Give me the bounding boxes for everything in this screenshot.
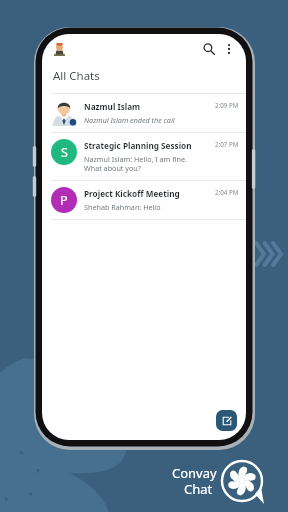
staticText: Strategic Planning Session [84, 140, 192, 151]
staticText: P [60, 192, 68, 209]
staticText: Convay [172, 464, 217, 482]
staticText: 2:04 PM [215, 188, 239, 196]
staticText: Shehab Rahman: Hello [84, 202, 161, 212]
button[interactable]: S [42, 133, 246, 180]
button[interactable]: Profile [50, 40, 68, 58]
staticText: 2:07 PM [215, 140, 239, 148]
staticText: 2:09 PM [215, 101, 239, 109]
staticText: Nazmul Islam ended the call [84, 115, 175, 125]
button[interactable]: Search [199, 39, 219, 59]
staticText: Project Kickoff Meeting [84, 188, 180, 199]
button[interactable]: New chat [216, 410, 237, 431]
button[interactable]: More options [220, 40, 238, 58]
staticText: S [61, 144, 68, 161]
staticText: All Chats [53, 68, 100, 84]
staticText: Nazmul Islam [84, 101, 141, 112]
button[interactable]: P [42, 181, 246, 219]
staticText: Nazmul Islam: Hello, I am fine. What abo… [84, 154, 187, 174]
button[interactable]: Nazmul Islam [42, 94, 246, 132]
staticText: Chat [184, 480, 213, 498]
